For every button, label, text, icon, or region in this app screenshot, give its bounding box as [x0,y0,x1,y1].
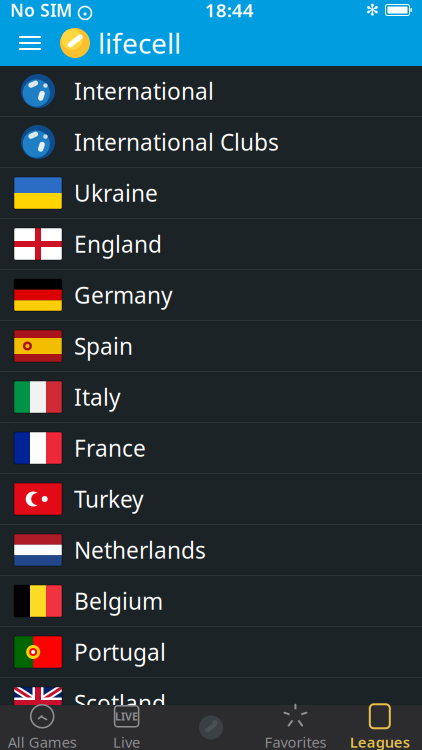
staticText: ✻ [365,1,378,19]
staticText: Live [113,732,140,750]
button[interactable]: lifecell [169,705,253,750]
staticText: All Games [8,732,77,750]
staticText: France [74,433,146,463]
button[interactable]: France [0,423,422,474]
staticText: Belgium [74,586,163,616]
button[interactable]: Portugal [0,627,422,678]
staticText: Ukraine [74,178,158,208]
button[interactable]: Turkey [0,474,422,525]
button[interactable]: All Games [0,705,84,750]
staticText: LIVE [115,709,138,723]
button[interactable]: International Clubs [0,117,422,168]
staticText: No SIM [10,0,72,21]
button[interactable]: Netherlands [0,525,422,576]
staticText: International Clubs [74,127,279,157]
button[interactable]: Germany [0,270,422,321]
button[interactable]: Menu [8,21,52,65]
button[interactable]: England [0,219,422,270]
staticText: 18:44 [205,0,254,22]
staticText: Leagues [350,732,410,750]
button[interactable]: Live [84,705,169,750]
button[interactable]: Favorites [253,705,338,750]
staticText: Netherlands [74,535,206,565]
button[interactable]: Scotland [0,678,422,729]
staticText: Favorites [264,732,326,750]
staticText: Spain [74,331,133,361]
button[interactable]: Italy [0,372,422,423]
button[interactable]: Spain [0,321,422,372]
staticText: International [74,76,214,106]
staticText: Turkey [74,484,144,514]
button[interactable]: International [0,66,422,117]
button[interactable]: Ukraine [0,168,422,219]
staticText: Scotland [74,688,166,718]
staticText: Italy [74,382,121,412]
staticText: Germany [74,280,173,310]
button[interactable]: Belgium [0,576,422,627]
staticText: Portugal [74,637,166,667]
staticText: lifecell [98,24,181,62]
button[interactable]: Leagues [338,705,422,750]
staticText: England [74,229,162,259]
